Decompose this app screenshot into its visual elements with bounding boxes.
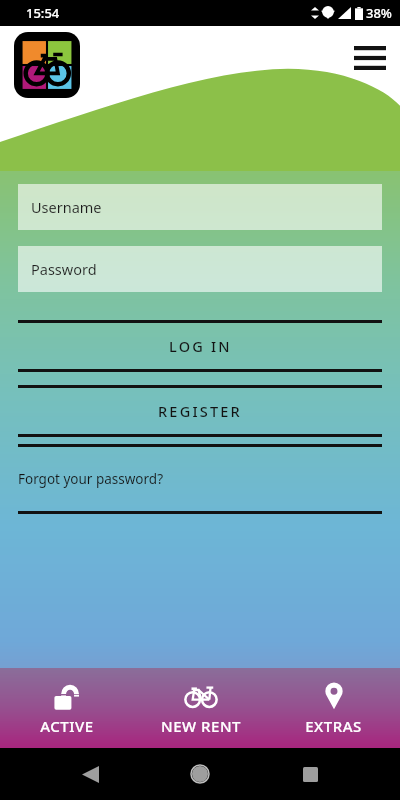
- staticText: Password: [31, 259, 97, 279]
- button[interactable]: Forgot your password?: [18, 447, 382, 511]
- staticText: 38%: [366, 4, 392, 22]
- staticText: LOG IN: [169, 336, 232, 356]
- button[interactable]: Menu: [346, 34, 394, 82]
- staticText: REGISTER: [158, 401, 242, 421]
- staticText: Username: [31, 197, 102, 217]
- button[interactable]: Username: [18, 184, 382, 230]
- staticText: 15:54: [26, 4, 60, 22]
- button[interactable]: ACTIVE: [0, 668, 134, 748]
- staticText: NEW RENT: [161, 716, 241, 736]
- button[interactable]: LOG IN: [18, 323, 382, 369]
- staticText: EXTRAS: [305, 716, 362, 736]
- button[interactable]: REGISTER: [18, 388, 382, 434]
- staticText: Forgot your password?: [18, 470, 164, 488]
- button[interactable]: Back: [70, 754, 110, 794]
- staticText: ACTIVE: [40, 716, 94, 736]
- button[interactable]: App logo: [14, 32, 80, 98]
- button[interactable]: NEW RENT: [134, 668, 267, 748]
- button[interactable]: EXTRAS: [267, 668, 400, 748]
- button[interactable]: Home: [180, 754, 220, 794]
- button[interactable]: Password: [18, 246, 382, 292]
- button[interactable]: Recents: [290, 754, 330, 794]
